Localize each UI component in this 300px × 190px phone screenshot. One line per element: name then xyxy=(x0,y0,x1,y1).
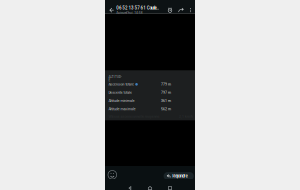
staticText: Descente totale xyxy=(108,90,132,95)
staticText: ALTITUDE xyxy=(108,75,122,82)
button[interactable]: Set reminder xyxy=(164,3,175,17)
button[interactable]: Add reaction xyxy=(107,170,118,182)
staticText: Ascension totale xyxy=(108,82,134,86)
staticText: Répondre xyxy=(172,173,187,179)
staticText: 779 m xyxy=(161,82,171,86)
staticText: 361 m xyxy=(161,99,171,103)
button[interactable]: Back xyxy=(107,3,116,17)
button[interactable]: Répondre xyxy=(164,172,194,180)
staticText: Altitude maximale xyxy=(108,107,136,111)
button[interactable]: Back xyxy=(123,179,137,190)
staticText: 06 52 13 57 61 Coude… xyxy=(116,5,159,11)
staticText: Aujourd'hui, 14:58 xyxy=(116,11,143,15)
staticText: 562 m xyxy=(161,107,171,111)
staticText: Altitude minimale xyxy=(108,99,135,103)
button[interactable]: More options xyxy=(186,3,194,17)
button[interactable]: Home xyxy=(143,179,157,190)
staticText: 797 m xyxy=(161,90,171,95)
button[interactable]: Recent apps xyxy=(163,179,177,190)
button[interactable]: Share xyxy=(175,3,186,17)
